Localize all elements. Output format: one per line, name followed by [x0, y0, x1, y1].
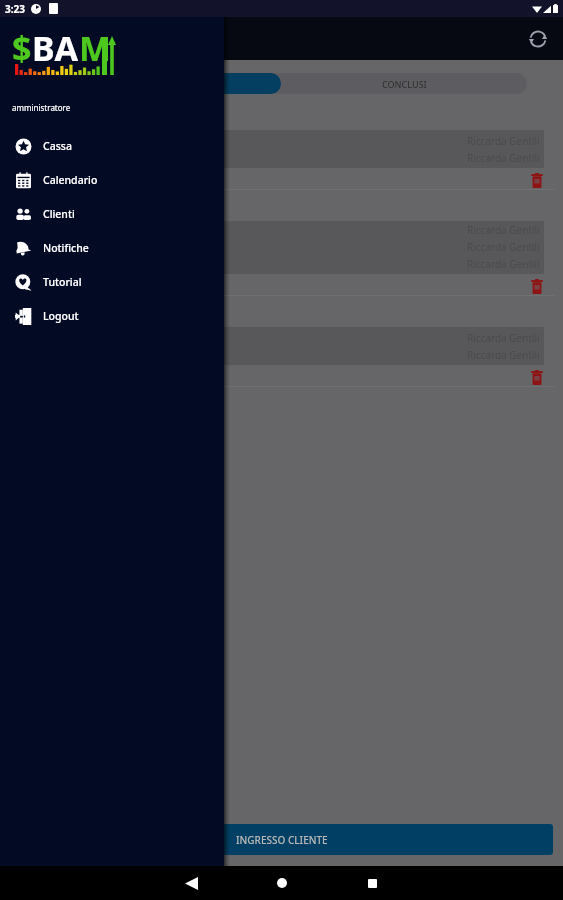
button[interactable]: IN CORSO: [36, 73, 281, 94]
staticText: Riccarda Gentili: [467, 151, 540, 165]
button[interactable]: Clienti: [0, 197, 224, 231]
staticText: Riccarda Gentili: [467, 257, 540, 271]
staticText: CONCLUSI: [382, 78, 427, 90]
button[interactable]: Back: [176, 868, 206, 898]
staticText: 3:23: [5, 2, 25, 16]
staticText: INGRESSO CLIENTE: [236, 833, 328, 847]
button[interactable]: Notifiche: [0, 231, 224, 265]
button[interactable]: Tutorial: [0, 265, 224, 299]
button[interactable]: Calendario: [0, 163, 224, 197]
button[interactable]: Cassa: [0, 129, 224, 163]
staticText: Riccarda Gentili: [467, 331, 540, 345]
button[interactable]: Refresh: [527, 28, 549, 50]
staticText: $: [12, 25, 32, 69]
button[interactable]: Logout: [0, 299, 224, 333]
staticText: amministratore: [12, 102, 71, 113]
button[interactable]: Delete: [531, 173, 543, 188]
staticText: Calendario: [43, 173, 98, 187]
staticText: BA: [32, 25, 79, 69]
button[interactable]: Delete: [531, 370, 543, 385]
staticText: Riccarda Gentili: [467, 348, 540, 362]
staticText: Riccarda Gentili: [467, 134, 540, 148]
button[interactable]: INGRESSO CLIENTE: [10, 824, 553, 855]
button[interactable]: CONCLUSI: [281, 73, 527, 94]
button[interactable]: Recents: [357, 868, 387, 898]
staticText: Notifiche: [43, 241, 89, 255]
staticText: M: [79, 25, 112, 69]
button[interactable]: Home: [267, 868, 297, 898]
staticText: Riccarda Gentili: [467, 240, 540, 254]
staticText: Cassa: [43, 139, 72, 153]
staticText: Clienti: [43, 207, 75, 221]
button[interactable]: Delete: [531, 279, 543, 294]
staticText: Riccarda Gentili: [467, 223, 540, 237]
staticText: Tutorial: [43, 275, 82, 289]
staticText: Logout: [43, 309, 79, 323]
